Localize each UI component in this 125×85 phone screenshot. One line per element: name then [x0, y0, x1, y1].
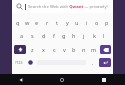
button[interactable]: g [59, 30, 69, 41]
button[interactable]: q [13, 17, 22, 28]
staticText: . [92, 59, 94, 66]
staticText: k [93, 32, 96, 39]
staticText: Search the Web with Qwant — privately! [28, 4, 108, 10]
staticText: i [86, 19, 88, 26]
button[interactable]: n [79, 44, 89, 55]
staticText: g [62, 32, 66, 39]
button[interactable]: a [16, 30, 27, 41]
button[interactable]: Back [0, 74, 41, 85]
staticText: t [56, 19, 58, 26]
button[interactable]: p [102, 17, 112, 28]
button[interactable]: i [82, 17, 92, 28]
button[interactable]: . [87, 57, 98, 68]
button[interactable]: h [69, 30, 79, 41]
staticText: w [25, 19, 30, 26]
button[interactable]: f [49, 30, 59, 41]
staticText: p [105, 19, 109, 26]
staticText: s [31, 32, 34, 39]
button[interactable]: s [27, 30, 38, 41]
button[interactable]: x [38, 44, 49, 55]
button[interactable]: Backspace [100, 45, 111, 54]
staticText: x [42, 46, 45, 53]
button[interactable]: o [92, 17, 102, 28]
button[interactable]: w [22, 17, 32, 28]
button[interactable]: Recent apps [83, 74, 125, 85]
button[interactable]: e [32, 17, 42, 28]
staticText: l [103, 32, 105, 39]
button[interactable]: t [52, 17, 62, 28]
button[interactable]: k [89, 30, 99, 41]
staticText: z [31, 46, 34, 53]
button[interactable]: Enter [99, 58, 111, 67]
button[interactable]: c [49, 44, 59, 55]
staticText: c [53, 46, 56, 53]
button[interactable]: Emoji [25, 57, 36, 68]
staticText: b [72, 46, 76, 53]
staticText: d [42, 32, 46, 39]
staticText: e [35, 19, 39, 26]
staticText: j [83, 32, 85, 39]
button[interactable]: Search the Web with Qwant — privately! [12, 0, 113, 13]
button[interactable]: z [27, 44, 38, 55]
staticText: r [46, 19, 49, 26]
button[interactable]: r [42, 17, 52, 28]
button[interactable]: v [59, 44, 69, 55]
staticText: v [63, 46, 66, 53]
button[interactable]: j [79, 30, 89, 41]
button[interactable]: b [69, 44, 79, 55]
button[interactable]: Symbols [13, 57, 25, 68]
staticText: f [53, 32, 55, 39]
staticText: m [91, 46, 97, 53]
staticText: ?123 [15, 60, 23, 65]
button[interactable]: y [62, 17, 72, 28]
staticText: a [20, 32, 24, 39]
staticText: y [66, 19, 69, 26]
staticText: q [16, 19, 20, 26]
button[interactable]: Home [41, 74, 83, 85]
staticText: h [72, 32, 76, 39]
button[interactable]: u [72, 17, 82, 28]
staticText: o [95, 19, 99, 26]
button[interactable]: m [89, 44, 99, 55]
staticText: n [82, 46, 86, 53]
staticText: u [75, 19, 79, 26]
button[interactable]: d [38, 30, 49, 41]
button[interactable]: Shift [14, 45, 26, 54]
button[interactable]: l [99, 30, 109, 41]
